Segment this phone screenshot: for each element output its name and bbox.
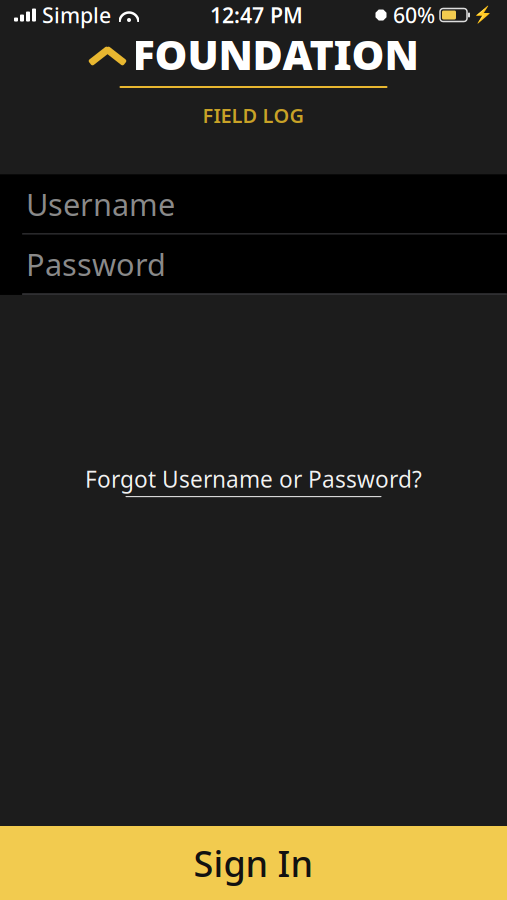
staticText: 12:47 PM [210,1,303,29]
staticText: 60% [393,1,435,29]
staticText: Username [26,184,175,224]
staticText: ⚡ [473,6,493,24]
button[interactable]: Sign In [0,826,507,900]
staticText: Forgot Username or Password? [85,464,422,494]
staticText: Sign In [193,839,313,887]
staticText: FOUNDATION [132,27,418,81]
staticText: FIELD LOG [202,102,304,129]
button[interactable]: Password [0,235,507,295]
staticText: Simple [42,1,111,29]
button[interactable]: Username [0,175,507,235]
staticText: Password [26,244,166,284]
button[interactable]: Forgot Username or Password? [61,454,446,507]
